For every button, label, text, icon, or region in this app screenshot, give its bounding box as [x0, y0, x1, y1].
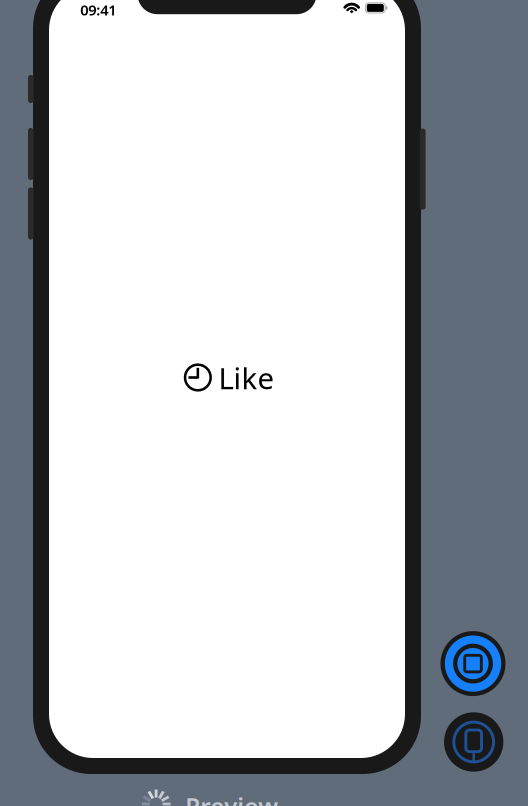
staticText: Preview: [185, 790, 278, 806]
staticText: Like: [218, 358, 274, 397]
button[interactable]: Live preview: [440, 631, 505, 696]
staticText: 09:41: [80, 0, 116, 19]
button[interactable]: Preview on device: [444, 712, 503, 772]
